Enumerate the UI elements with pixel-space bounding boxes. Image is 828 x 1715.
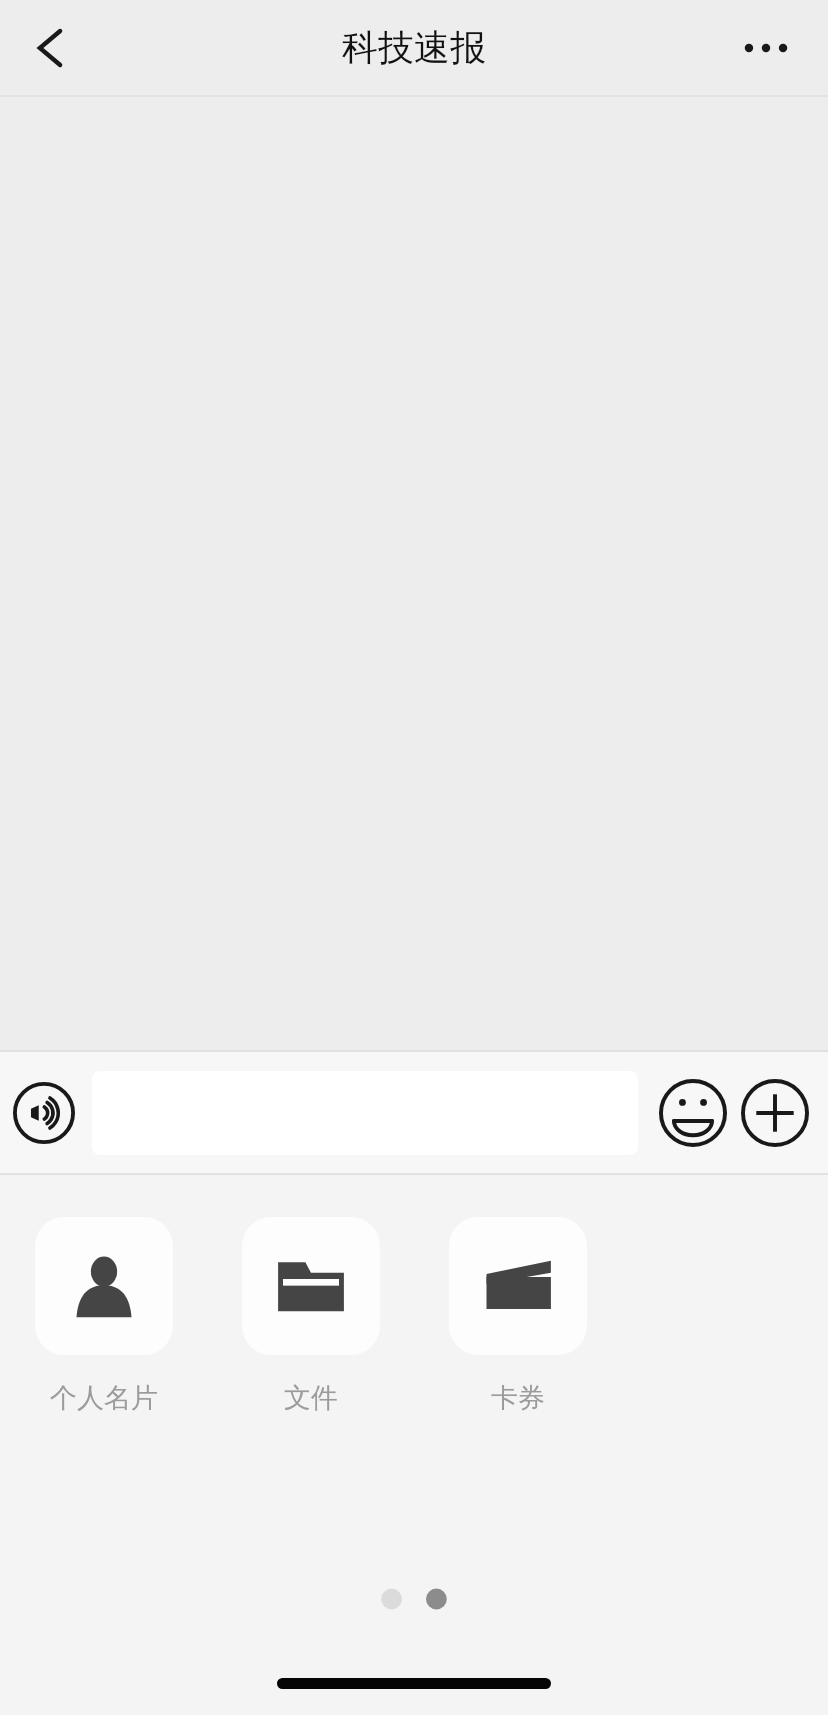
button[interactable]: More options <box>720 2 812 94</box>
button[interactable]: 个人名片 <box>0 1217 207 1415</box>
button[interactable]: Back <box>4 2 96 94</box>
staticText: 卡券 <box>491 1381 545 1415</box>
button[interactable]: 文件 <box>207 1217 414 1415</box>
button[interactable]: 卡券 <box>414 1217 621 1415</box>
staticText: 个人名片 <box>50 1381 158 1415</box>
button[interactable]: More functions <box>734 1072 816 1154</box>
staticText: 科技速报 <box>342 25 486 70</box>
staticText: 文件 <box>284 1381 338 1415</box>
button[interactable]: Emoji <box>652 1072 734 1154</box>
button[interactable]: Voice input <box>8 1077 80 1149</box>
